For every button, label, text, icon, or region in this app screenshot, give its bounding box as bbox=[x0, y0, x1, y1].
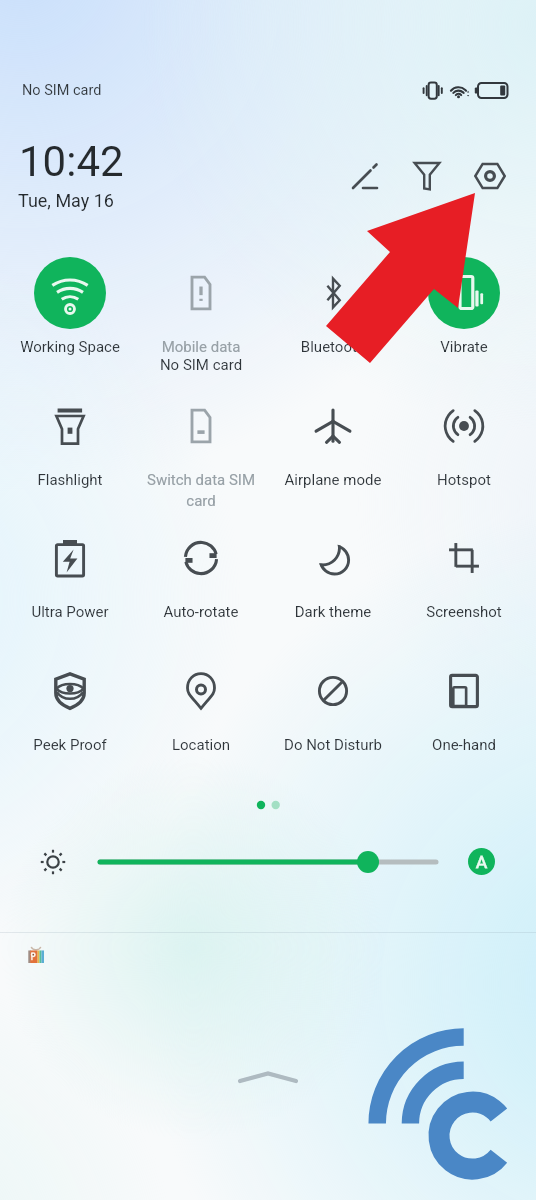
button[interactable]: Hotspot bbox=[399, 386, 529, 518]
staticText: Vibrate bbox=[399, 338, 529, 356]
staticText: Mobile data bbox=[136, 338, 266, 356]
staticText: Auto-rotate bbox=[136, 603, 266, 621]
button[interactable]: Bluetooth bbox=[268, 253, 398, 385]
staticText: Do Not Disturb bbox=[268, 736, 398, 754]
button[interactable]: Edit bbox=[343, 154, 387, 198]
staticText: Flashlight bbox=[5, 471, 135, 489]
staticText: Peek Proof bbox=[5, 736, 135, 754]
button[interactable]: Dark theme bbox=[268, 518, 398, 650]
staticText: Working Space bbox=[5, 338, 135, 356]
button[interactable]: Screenshot bbox=[399, 518, 529, 650]
button[interactable]: Collapse bbox=[232, 1062, 304, 1088]
staticText: Tue, May 16 bbox=[18, 190, 114, 211]
button[interactable]: Working Space bbox=[5, 253, 135, 385]
staticText: Hotspot bbox=[399, 471, 529, 489]
button[interactable]: Do Not Disturb bbox=[268, 651, 398, 783]
staticText: Screenshot bbox=[399, 603, 529, 621]
staticText: Airplane mode bbox=[268, 471, 398, 489]
button[interactable]: One-hand bbox=[399, 651, 529, 783]
staticText: 10:42 bbox=[19, 137, 124, 186]
button[interactable]: Switch data SIM card bbox=[136, 386, 266, 518]
button[interactable]: Flashlight bbox=[5, 386, 135, 518]
button[interactable]: Location bbox=[136, 651, 266, 783]
button[interactable]: Peek Proof bbox=[5, 651, 135, 783]
staticText: Location bbox=[136, 736, 266, 754]
staticText: Dark theme bbox=[268, 603, 398, 621]
button[interactable]: Auto brightness bbox=[468, 848, 495, 875]
staticText: No SIM card bbox=[136, 356, 266, 374]
button[interactable]: Vibrate bbox=[399, 253, 529, 385]
button[interactable]: Filter bbox=[405, 154, 449, 198]
staticText: Switch data SIM card bbox=[136, 471, 266, 509]
button[interactable]: Auto-rotate bbox=[136, 518, 266, 650]
button[interactable]: Mobile data bbox=[136, 253, 266, 385]
staticText: No SIM card bbox=[22, 82, 102, 99]
button[interactable]: Page 2 bbox=[268, 797, 284, 813]
button[interactable]: Settings bbox=[468, 154, 512, 198]
button[interactable]: Airplane mode bbox=[268, 386, 398, 518]
staticText: One-hand bbox=[399, 736, 529, 754]
staticText: Ultra Power bbox=[5, 603, 135, 621]
button[interactable]: Page 1 bbox=[253, 797, 269, 813]
staticText: A bbox=[476, 852, 488, 872]
button[interactable]: Brightness bbox=[96, 846, 440, 878]
button[interactable]: Ultra Power bbox=[5, 518, 135, 650]
staticText: Bluetooth bbox=[268, 338, 398, 356]
